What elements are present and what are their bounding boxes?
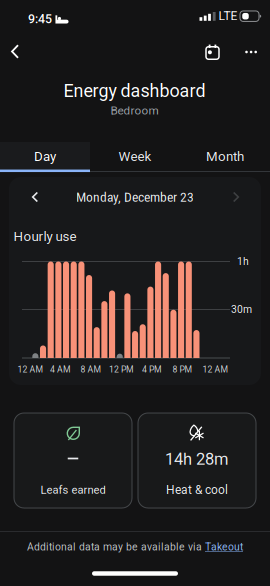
staticText: 4 PM [142, 364, 162, 375]
staticText: Month [206, 149, 244, 164]
staticText: Hourly use [13, 229, 76, 244]
staticText: Monday, December 23 [76, 189, 194, 205]
staticText: 30m [231, 303, 252, 316]
button[interactable]: Day [0, 142, 90, 171]
staticText: Day [34, 149, 56, 164]
button[interactable]: Takeout [205, 541, 243, 553]
button[interactable]: Calendar [197, 36, 227, 66]
staticText: 14h 28m [165, 449, 229, 469]
staticText: Bedroom [110, 104, 158, 117]
button[interactable]: 14h 28m [138, 413, 256, 508]
button[interactable]: More options [235, 37, 265, 67]
staticText: LTE [218, 9, 237, 23]
staticText: Additional data may be available via [27, 541, 205, 553]
button[interactable]: Next day [223, 184, 249, 210]
staticText: 9:45 [28, 12, 52, 26]
staticText: 12 PM [109, 364, 134, 375]
button[interactable]: Month [180, 142, 270, 171]
button[interactable]: Leafs earned [14, 413, 132, 508]
staticText: Heat & cool [166, 483, 228, 497]
staticText: Week [118, 149, 151, 164]
staticText: 12 AM [17, 364, 43, 375]
staticText: Leafs earned [40, 483, 105, 496]
button[interactable]: Week [90, 142, 180, 171]
button[interactable]: Previous day [22, 184, 48, 210]
staticText: 8 AM [80, 364, 101, 375]
staticText: 8 PM [172, 364, 192, 375]
staticText: Energy dashboard [63, 80, 205, 101]
button[interactable]: Back [0, 36, 30, 66]
staticText: Takeout [205, 541, 243, 553]
staticText: 1h [237, 255, 249, 268]
staticText: 4 AM [50, 364, 71, 375]
staticText: 12 AM [202, 364, 228, 375]
